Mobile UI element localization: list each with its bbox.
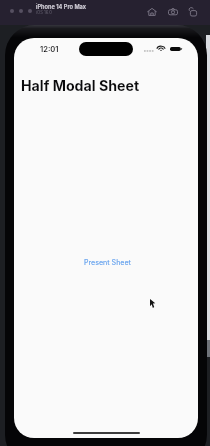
staticText: Half Modal Sheet (21, 77, 140, 94)
button[interactable]: Window button (28, 9, 32, 13)
button[interactable]: Present Sheet (78, 254, 137, 271)
button[interactable]: Home (145, 5, 158, 18)
staticText: iPhone 14 Pro Max (36, 4, 87, 11)
button[interactable]: Rotate (186, 5, 199, 18)
button[interactable]: Window button (10, 9, 14, 13)
button[interactable]: Screenshot (166, 5, 179, 18)
staticText: iOS 16.0 (36, 10, 52, 15)
button[interactable]: Window button (19, 9, 23, 13)
staticText: Present Sheet (84, 258, 131, 267)
staticText: 12:01 (40, 45, 59, 54)
